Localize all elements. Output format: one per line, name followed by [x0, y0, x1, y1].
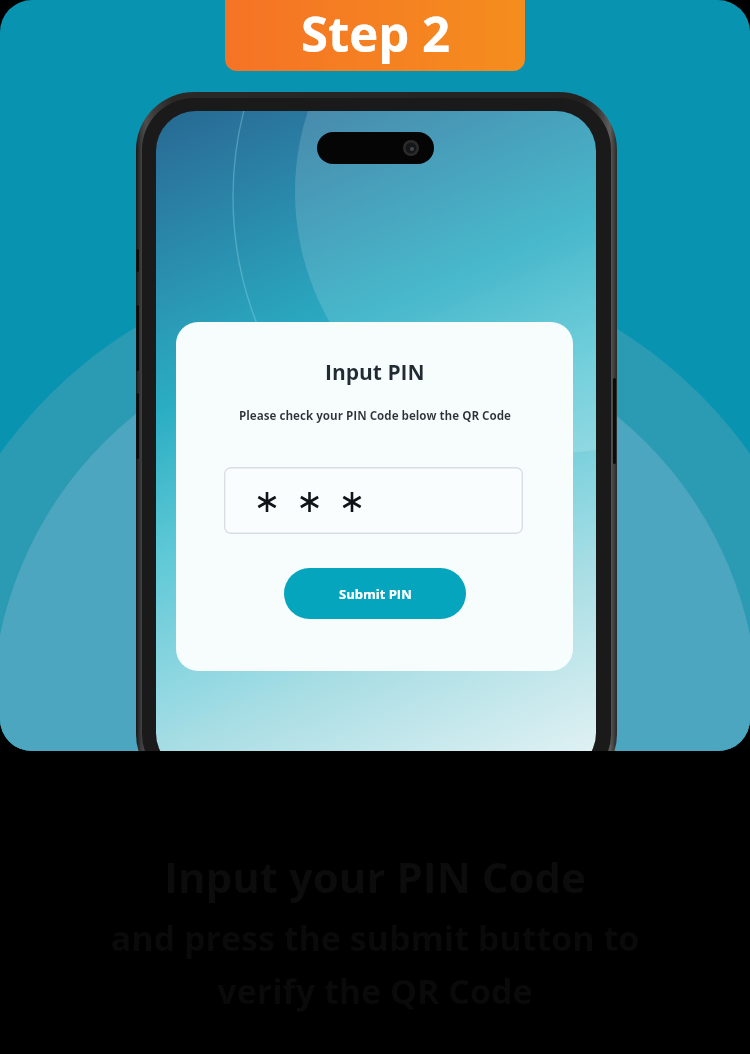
staticText: Input PIN — [325, 358, 425, 387]
button[interactable]: Step 2 — [225, 0, 525, 71]
staticText: Step 2 — [301, 0, 450, 67]
staticText: and press the submit button to verify th… — [75, 915, 675, 1014]
button[interactable]: Submit PIN — [284, 568, 466, 619]
staticText: Submit PIN — [339, 585, 412, 603]
staticText: Input your PIN Code — [164, 848, 586, 905]
button[interactable] — [224, 467, 523, 534]
staticText: Please check your PIN Code below the QR … — [239, 408, 511, 424]
